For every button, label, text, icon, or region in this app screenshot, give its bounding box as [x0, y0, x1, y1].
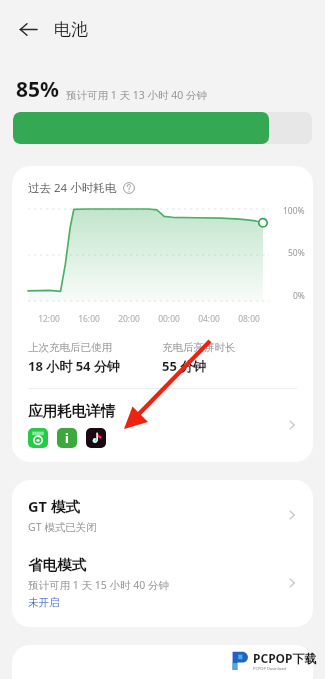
- button[interactable]: GT 模式: [12, 480, 313, 544]
- staticText: 20:00: [118, 313, 140, 325]
- staticText: 上次充电后已使用: [28, 341, 112, 354]
- staticText: 55 分钟: [162, 357, 207, 375]
- button[interactable]: Back: [10, 11, 46, 47]
- staticText: PCPOP Download: [253, 666, 286, 671]
- staticText: 00:00: [158, 313, 180, 325]
- button[interactable]: 省电模式: [12, 544, 313, 627]
- button[interactable]: 应用耗电详情: [12, 389, 313, 462]
- staticText: i: [65, 429, 69, 447]
- staticText: PCPOP下载: [253, 650, 317, 666]
- staticText: 50%: [288, 247, 305, 259]
- staticText: 省电模式: [28, 556, 86, 574]
- staticText: 12:00: [38, 313, 60, 325]
- staticText: 04:00: [198, 313, 220, 325]
- staticText: 100%: [283, 205, 305, 217]
- staticText: 16:00: [78, 313, 100, 325]
- staticText: 08:00: [238, 313, 260, 325]
- staticText: 过去 24 小时耗电: [28, 180, 117, 196]
- staticText: 预计可用 1 天 13 小时 40 分钟: [66, 88, 207, 102]
- staticText: GT 模式: [28, 496, 80, 516]
- staticText: 应用耗电详情: [28, 402, 115, 420]
- staticText: GT 模式已关闭: [28, 520, 97, 534]
- button[interactable]: Help: [122, 181, 136, 195]
- staticText: 未开启: [28, 596, 60, 609]
- staticText: 18 小时 54 分钟: [28, 357, 120, 375]
- staticText: 85%: [16, 75, 59, 104]
- staticText: 充电后亮屏时长: [162, 341, 236, 354]
- staticText: 预计可用 1 天 15 小时 40 分钟: [28, 578, 169, 592]
- staticText: 0%: [293, 290, 305, 302]
- staticText: 电池: [54, 19, 88, 40]
